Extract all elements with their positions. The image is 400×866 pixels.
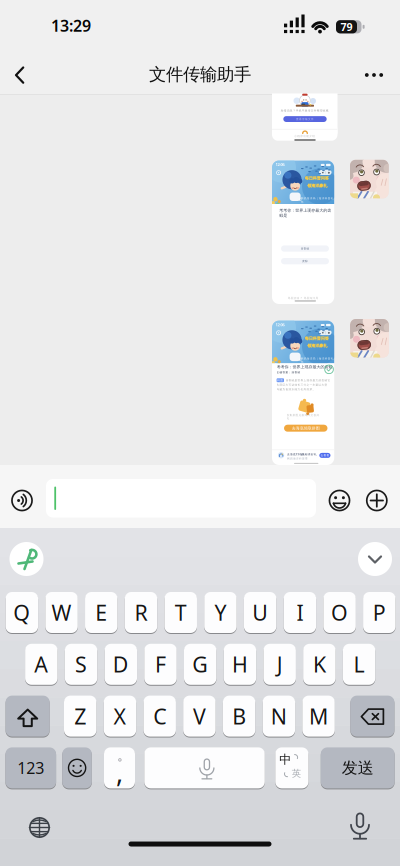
staticText: C [153,702,166,730]
button[interactable]: O [0,0,400,866]
staticText: 抹香鲸 [300,247,309,250]
button[interactable]: Quiz answer screenshot message [0,0,400,866]
staticText: P [373,598,386,627]
staticText: 领海洋豪礼 [307,343,327,348]
staticText: 每日科普问答 [305,336,329,341]
button[interactable]: Sticker [0,0,400,866]
staticText: N [271,702,287,730]
staticText: A [34,650,48,678]
staticText: 领海洋豪礼 [307,183,327,188]
button[interactable]: Message input [0,0,400,866]
staticText: Q [13,598,30,627]
button[interactable]: X [0,0,400,866]
button[interactable]: V [0,0,400,866]
button[interactable]: Delete [0,0,400,866]
staticText: 去看看 [320,454,329,457]
button[interactable]: S [0,0,400,866]
staticText: 网易海洋局｜海洋科普礼包 [301,357,334,363]
staticText: U [252,598,268,627]
button[interactable]: G [0,0,400,866]
button[interactable]: More functions [0,0,400,866]
staticText: J [277,650,283,678]
button[interactable]: Emoji [0,0,400,866]
button[interactable]: Shared mini program message [0,0,400,866]
button[interactable]: L [0,0,400,866]
staticText: 科普 [277,379,283,382]
staticText: 考考你：世界上现存最大的齿 [279,208,331,213]
staticText: B [232,702,246,730]
staticText: 头部巨大可达体长三分之一主要以大型 [277,383,328,387]
staticText: 收集拼图兑换海洋文创好礼 [287,413,320,420]
button[interactable]: Back [0,0,400,866]
button[interactable]: P [0,0,400,866]
button[interactable]: H [0,0,400,866]
button[interactable]: U [0,0,400,866]
staticText: 文件传输助手 [149,64,251,85]
staticText: , [116,754,123,790]
staticText: O [331,598,348,627]
button[interactable]: Shift [0,0,400,866]
staticText: 乌贼为食潜水能力名列前茅。 [277,388,316,391]
staticText: L [354,650,365,678]
staticText: 正确答案：抹香鲸 [277,371,301,374]
button[interactable]: Dictation [0,0,400,866]
button[interactable]: A [0,0,400,866]
staticText: Y [214,598,226,627]
button[interactable]: Input method [0,0,400,866]
staticText: 去海底领取拼图 [292,426,320,431]
staticText: X [113,702,126,730]
staticText: 网易游戏 × 网易海洋局 [288,296,319,300]
staticText: 79 [340,20,352,34]
button[interactable]: , [0,0,400,866]
button[interactable]: R [0,0,400,866]
button[interactable]: Y [0,0,400,866]
button[interactable]: C [0,0,400,866]
staticText: E [95,598,107,627]
staticText: R [134,598,147,627]
button[interactable]: Quiz screenshot message [0,0,400,866]
staticText: 领海洋豪礼 [307,183,327,188]
button[interactable]: Voice message [0,0,400,866]
staticText: H [232,650,248,678]
staticText: 发错消息？手机平板传文件整理收藏 [281,109,329,112]
button[interactable]: Sticker [0,0,400,866]
staticText: I [296,598,303,627]
button[interactable]: D [0,0,400,866]
button[interactable]: Space [0,0,400,866]
staticText: 123 [17,757,44,778]
staticText: 去海底easy赢鲸喜好礼 [287,452,317,456]
button[interactable]: Next keyboard [0,0,400,866]
staticText: 小程序功能介绍 [294,135,315,138]
button[interactable]: K [0,0,400,866]
button[interactable]: 发送 [0,0,400,866]
staticText: 发送 [342,758,374,778]
staticText: 网易海洋科普季 [287,457,308,460]
button[interactable]: Q [0,0,400,866]
staticText: 鲸是 [279,213,287,218]
button[interactable]: Switch language [0,0,400,866]
button[interactable]: Z [0,0,400,866]
button[interactable]: E [0,0,400,866]
staticText: K [313,650,326,678]
button[interactable]: F [0,0,400,866]
button[interactable]: W [0,0,400,866]
staticText: 12:06 [275,322,284,327]
staticText: D [113,650,129,678]
button[interactable]: N [0,0,400,866]
staticText: 13:29 [51,15,91,36]
button[interactable]: T [0,0,400,866]
staticText: 每日科普问答 [305,336,329,341]
staticText: W [52,598,72,627]
button[interactable]: B [0,0,400,866]
button[interactable]: More [0,0,400,866]
staticText: 网易海洋局｜海洋科普礼包 [301,197,334,203]
button[interactable]: M [0,0,400,866]
button[interactable]: J [0,0,400,866]
staticText: S [75,650,87,678]
button[interactable]: 123 [0,0,400,866]
staticText: 12:06 [275,162,284,167]
button[interactable]: Emoji keyboard [0,0,400,866]
staticText: 虎鲸 [302,259,308,263]
button[interactable]: Dismiss keyboard [0,0,400,866]
button[interactable]: I [0,0,400,866]
